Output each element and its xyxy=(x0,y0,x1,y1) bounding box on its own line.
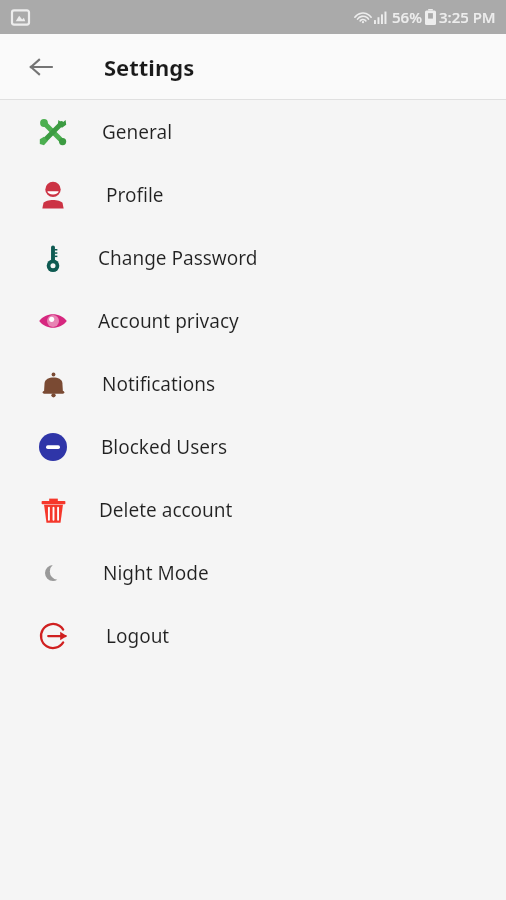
staticText: 3:25 PM xyxy=(439,7,496,27)
staticText: Profile xyxy=(106,182,164,208)
staticText: Settings xyxy=(104,52,195,82)
button[interactable]: Change Password xyxy=(0,226,506,289)
staticText: Delete account xyxy=(99,497,233,523)
staticText: Account privacy xyxy=(98,308,239,334)
button[interactable]: Account privacy xyxy=(0,289,506,352)
button[interactable]: Back xyxy=(18,44,64,90)
staticText: 56% xyxy=(392,7,422,27)
button[interactable]: Night Mode xyxy=(0,541,506,604)
staticText: Notifications xyxy=(102,371,216,397)
button[interactable]: Blocked Users xyxy=(0,415,506,478)
staticText: General xyxy=(102,119,173,145)
button[interactable]: Notifications xyxy=(0,352,506,415)
button[interactable]: Logout xyxy=(0,604,506,667)
staticText: Blocked Users xyxy=(101,434,228,460)
button[interactable]: General xyxy=(0,100,506,163)
staticText: Logout xyxy=(106,623,170,649)
staticText: Night Mode xyxy=(103,560,209,586)
button[interactable]: Delete account xyxy=(0,478,506,541)
staticText: Change Password xyxy=(98,245,258,271)
button[interactable]: Profile xyxy=(0,163,506,226)
